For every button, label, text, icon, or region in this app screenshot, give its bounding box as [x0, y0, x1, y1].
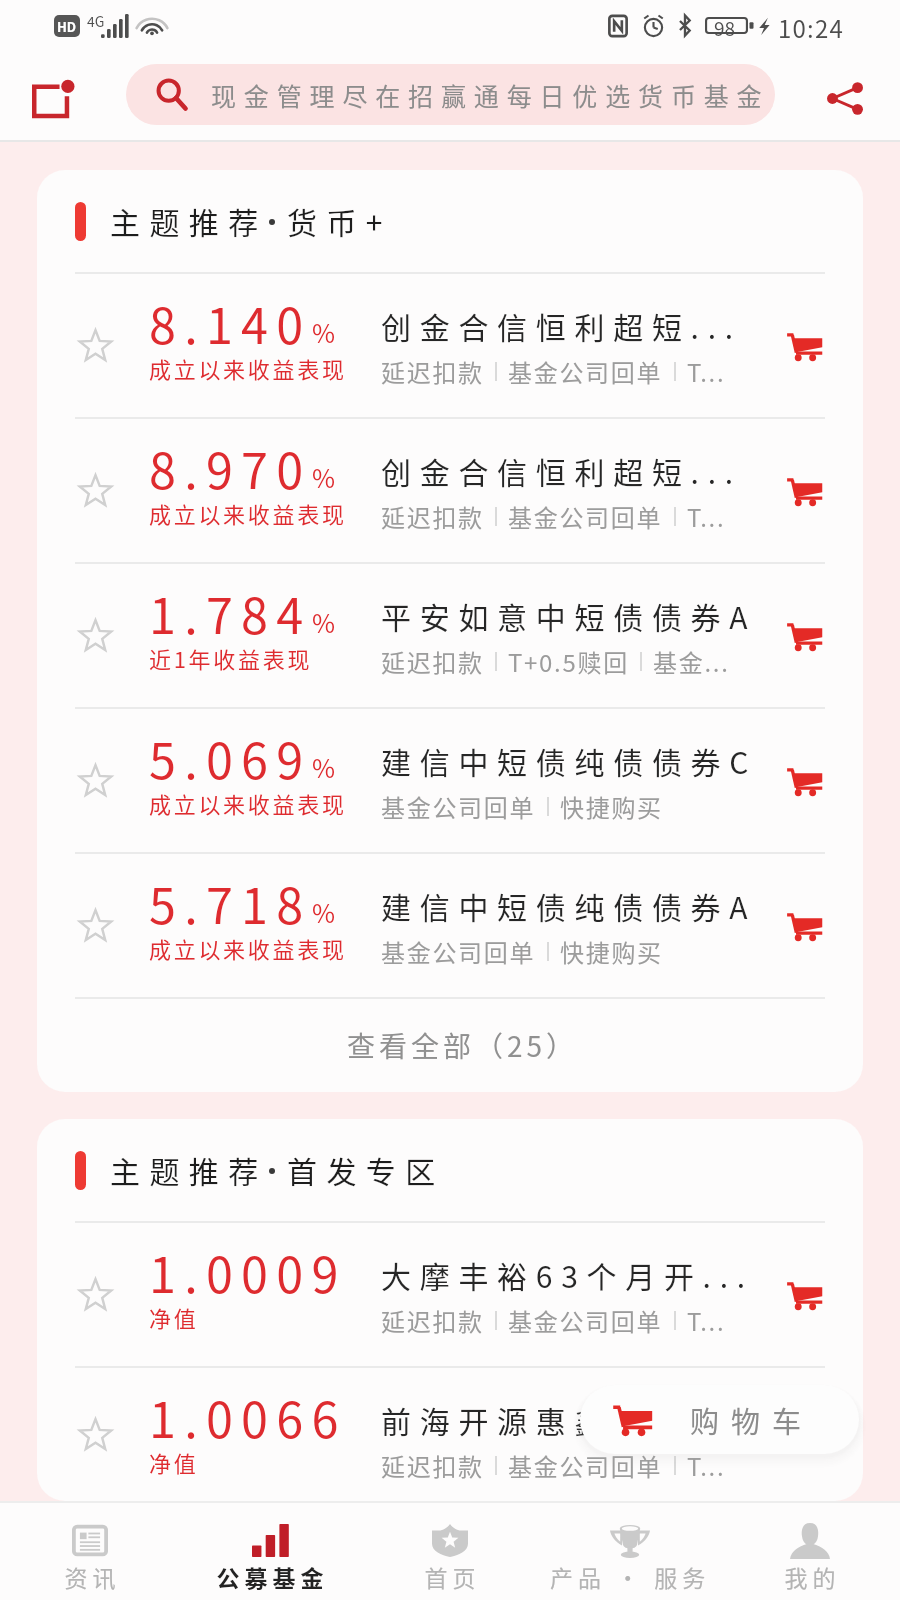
staticText: 货币+: [287, 199, 392, 242]
staticText: 98: [714, 14, 736, 39]
staticText: 首发专区: [287, 1148, 445, 1191]
button[interactable]: 购物车: [580, 1385, 859, 1454]
staticText: %: [312, 459, 336, 495]
staticText: 1.0009: [149, 1237, 347, 1307]
staticText: 5.069: [149, 723, 312, 793]
button[interactable]: 产品 · 服务: [540, 1503, 720, 1600]
staticText: 成立以来收益表现: [149, 352, 347, 384]
button[interactable]: Favorite: [37, 1368, 863, 1501]
button[interactable]: Add to cart: [768, 709, 840, 852]
button[interactable]: Favorite: [70, 1223, 120, 1366]
staticText: 大摩丰裕63个月开...: [381, 1253, 754, 1296]
button[interactable]: Favorite: [37, 709, 863, 852]
staticText: 基金公司回单: [508, 354, 663, 389]
staticText: 基金公司回单: [508, 499, 663, 534]
staticText: 主题推荐: [110, 1148, 268, 1191]
staticText: T...: [687, 354, 726, 389]
staticText: 查看全部（25）: [347, 1025, 579, 1066]
staticText: 1.784: [149, 578, 312, 648]
button[interactable]: Favorite: [37, 419, 863, 562]
staticText: 净值: [149, 1301, 199, 1333]
staticText: T...: [687, 1448, 726, 1483]
button[interactable]: 首页: [360, 1503, 540, 1600]
staticText: T+0.5赎回: [508, 644, 629, 679]
button[interactable]: Favorite: [70, 854, 120, 997]
button[interactable]: Favorite: [70, 564, 120, 707]
button[interactable]: 现金管理尽在招赢通每日优选货币基金: [126, 64, 775, 125]
button[interactable]: Share: [811, 55, 879, 142]
staticText: 前海开源惠鑫混合A: [381, 1398, 718, 1441]
staticText: 创金合信恒利超短...: [381, 449, 742, 492]
staticText: 基金公司回单: [381, 789, 536, 824]
staticText: 基金公司回单: [381, 934, 536, 969]
staticText: 购物车: [690, 1399, 814, 1441]
button[interactable]: Add to cart: [768, 854, 840, 997]
staticText: 成立以来收益表现: [149, 787, 347, 819]
button[interactable]: Favorite: [70, 1368, 120, 1501]
button[interactable]: Favorite: [37, 564, 863, 707]
button[interactable]: 资讯: [0, 1503, 180, 1600]
staticText: %: [312, 894, 336, 930]
staticText: 净值: [149, 1446, 199, 1478]
staticText: 延迟扣款: [381, 354, 484, 389]
staticText: 延迟扣款: [381, 1303, 484, 1338]
staticText: 成立以来收益表现: [149, 932, 347, 964]
staticText: 延迟扣款: [381, 644, 484, 679]
staticText: 首页: [422, 1560, 478, 1593]
staticText: 成立以来收益表现: [149, 497, 347, 529]
staticText: 1.0066: [149, 1382, 347, 1452]
staticText: 基金公司回单: [508, 1303, 663, 1338]
staticText: 5.718: [149, 868, 312, 938]
staticText: 建信中短债纯债债券C: [381, 739, 758, 782]
staticText: 主题推荐: [110, 199, 268, 242]
staticText: 8.970: [149, 433, 312, 503]
staticText: 资讯: [62, 1560, 118, 1593]
button[interactable]: Add to cart: [768, 1223, 840, 1366]
staticText: 现金管理尽在招赢通每日优选货币基金: [211, 77, 770, 113]
staticText: 快捷购买: [560, 789, 663, 824]
staticText: 近1年收益表现: [149, 642, 313, 674]
staticText: 创金合信恒利超短...: [381, 304, 742, 347]
staticText: 8.140: [149, 288, 312, 358]
button[interactable]: Add to cart: [768, 419, 840, 562]
staticText: 建信中短债纯债债券A: [381, 884, 757, 927]
button[interactable]: Favorite: [70, 709, 120, 852]
staticText: 平安如意中短债债券A: [381, 594, 757, 637]
staticText: T...: [687, 1303, 726, 1338]
button[interactable]: Messages: [20, 55, 90, 142]
staticText: 基金公司回单: [508, 1448, 663, 1483]
button[interactable]: Favorite: [37, 1223, 863, 1366]
staticText: %: [312, 314, 336, 350]
staticText: 公募基金: [214, 1560, 326, 1593]
staticText: 延迟扣款: [381, 1448, 484, 1483]
staticText: 基金...: [653, 644, 730, 679]
staticText: T...: [687, 499, 726, 534]
staticText: %: [312, 749, 336, 785]
staticText: HD: [57, 17, 77, 36]
staticText: %: [312, 604, 336, 640]
button[interactable]: Favorite: [37, 854, 863, 997]
button[interactable]: 查看全部（25）: [37, 999, 863, 1092]
button[interactable]: Favorite: [70, 274, 120, 417]
button[interactable]: 我的: [720, 1503, 900, 1600]
button[interactable]: Favorite: [37, 274, 863, 417]
button[interactable]: Favorite: [70, 419, 120, 562]
staticText: 快捷购买: [560, 934, 663, 969]
staticText: 10:24: [778, 10, 844, 45]
button[interactable]: Add to cart: [768, 564, 840, 707]
staticText: 产品 · 服务: [550, 1560, 711, 1593]
staticText: 延迟扣款: [381, 499, 484, 534]
button[interactable]: Add to cart: [768, 1368, 840, 1501]
staticText: 我的: [782, 1560, 838, 1593]
button[interactable]: Add to cart: [768, 274, 840, 417]
button[interactable]: 公募基金: [180, 1503, 360, 1600]
staticText: 4G: [87, 11, 105, 31]
